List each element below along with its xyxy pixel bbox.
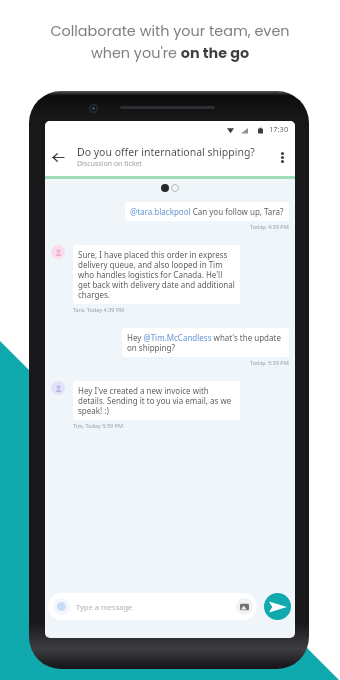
- staticText: Tara, Today 4:39 PM: [73, 306, 125, 313]
- button[interactable]: Send: [264, 593, 291, 620]
- staticText: Type a message: [76, 602, 133, 612]
- staticText: Today, 5:39 PM: [250, 359, 289, 366]
- button[interactable]: More options: [275, 150, 289, 164]
- staticText: Sure, I have placed this order in expres…: [78, 249, 235, 300]
- button[interactable]: @tara.blackpool Can you follow up, Tara?: [125, 202, 289, 221]
- button[interactable]: Back: [49, 148, 67, 166]
- staticText: Discussion on ticket: [77, 159, 143, 169]
- staticText: Tim, Today 5:39 PM: [73, 422, 123, 429]
- staticText: Hey I've created a new invoice with deta…: [78, 385, 235, 416]
- button[interactable]: Hey I've created a new invoice with deta…: [73, 381, 240, 420]
- button[interactable]: Hey @Tim.McCandless what's the update on…: [122, 328, 289, 357]
- staticText: Today, 4:39 PM: [250, 223, 289, 230]
- staticText: Hey @Tim.McCandless what's the update on…: [127, 332, 284, 353]
- button[interactable]: Sure, I have placed this order in expres…: [73, 245, 240, 304]
- button[interactable]: Attach image: [236, 598, 253, 615]
- staticText: Do you offer international shipping?: [77, 145, 255, 159]
- staticText: Collaborate with your team, even when yo…: [50, 21, 290, 63]
- staticText: @tara.blackpool Can you follow up, Tara?: [130, 206, 284, 217]
- staticText: 17:30: [269, 124, 289, 134]
- button[interactable]: Type a message: [48, 593, 257, 620]
